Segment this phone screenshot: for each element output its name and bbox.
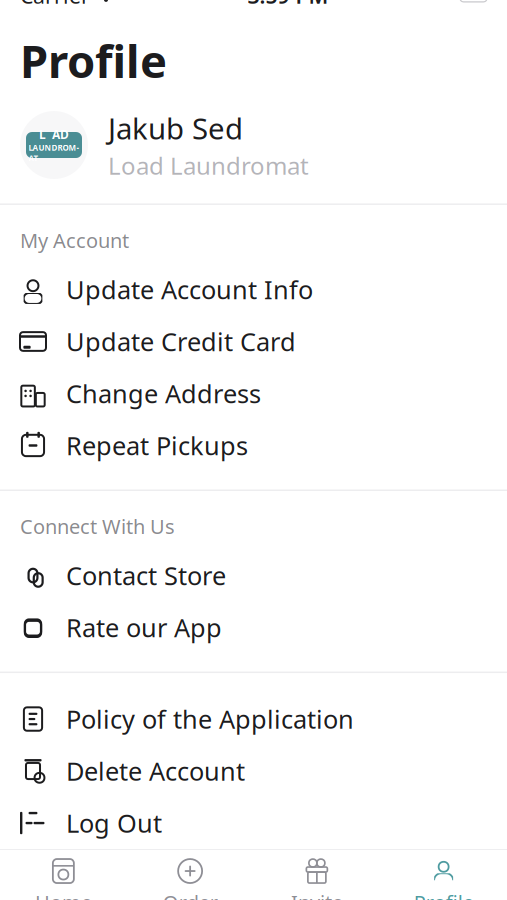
staticText: Invite [291, 889, 343, 900]
staticText: 3:59 PM [247, 0, 328, 9]
button[interactable]: Contact Store [0, 549, 507, 601]
button[interactable]: Invite [253, 850, 380, 900]
staticText: Policy of the Application [66, 702, 354, 736]
button[interactable]: Change Address [0, 367, 507, 419]
staticText: Update Account Info [66, 273, 313, 306]
button[interactable]: Repeat Pickups [0, 419, 507, 471]
staticText: Jakub Sed [108, 109, 243, 148]
staticText: Repeat Pickups [66, 429, 248, 462]
staticText: Contact Store [66, 559, 226, 592]
staticText: Profile [20, 30, 167, 91]
staticText: Rate our App [66, 611, 222, 644]
staticText: Profile [414, 889, 474, 900]
button[interactable]: Delete Account [0, 745, 507, 797]
staticText: Update Credit Card [66, 325, 296, 358]
button[interactable]: Update Account Info [0, 263, 507, 315]
staticText: Change Address [66, 377, 261, 410]
staticText: Connect With Us [20, 513, 175, 540]
staticText: L AD [39, 126, 69, 142]
button[interactable]: Rate our App [0, 601, 507, 653]
staticText: My Account [20, 227, 129, 253]
staticText: Carrier [20, 0, 90, 9]
staticText: LAUNDROMAT [28, 142, 79, 164]
staticText: Delete Account [66, 754, 245, 788]
staticText: Home [35, 889, 92, 900]
button[interactable]: Policy of the Application [0, 693, 507, 745]
button[interactable]: Profile [380, 850, 507, 900]
staticText: Load Laundromat [108, 150, 309, 181]
button[interactable]: Home [0, 850, 127, 900]
button[interactable]: L AD [0, 91, 507, 203]
button[interactable]: Update Credit Card [0, 315, 507, 367]
button[interactable]: Order [127, 850, 254, 900]
button[interactable]: Log Out [0, 797, 507, 849]
staticText: Order [163, 889, 218, 900]
staticText: Log Out [66, 806, 162, 840]
